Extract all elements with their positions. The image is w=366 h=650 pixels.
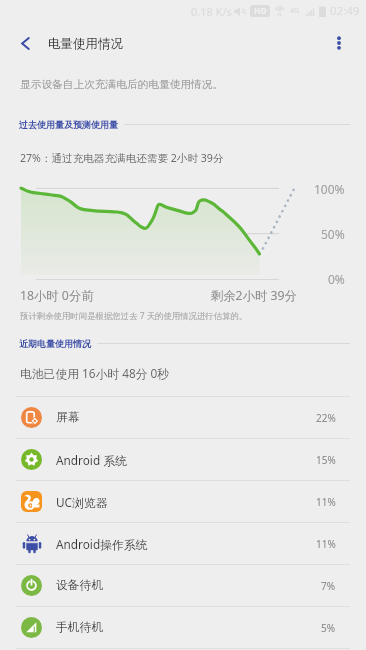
staticText: 手机待机 <box>56 620 104 635</box>
staticText: 18小时 0分前 <box>20 287 94 304</box>
button[interactable]: 手机待机 <box>0 607 366 648</box>
staticText: 7% <box>321 579 336 593</box>
staticText: 电池已使用 16小时 48分 0秒 <box>20 365 170 381</box>
staticText: 过去使用量及预测使用量 <box>19 119 118 130</box>
staticText: 11% <box>316 495 336 509</box>
staticText: 屏幕 <box>56 410 80 425</box>
staticText: 0.18 K/s <box>191 4 232 19</box>
staticText: 15% <box>316 453 336 467</box>
button[interactable]: More options <box>326 30 352 56</box>
staticText: 显示设备自上次充满电后的电量使用情况。 <box>20 78 224 91</box>
staticText: 近期电量使用情况 <box>19 338 91 349</box>
staticText: 27%：通过充电器充满电还需要 2小时 39分 <box>20 151 224 165</box>
button[interactable]: UC浏览器 <box>0 481 366 522</box>
button[interactable]: Android 系统 <box>0 439 366 480</box>
staticText: 02:49 <box>330 3 360 19</box>
staticText: Android操作系统 <box>56 536 148 552</box>
staticText: 22% <box>316 411 336 425</box>
staticText: 设备待机 <box>56 578 104 593</box>
staticText: 5% <box>321 621 336 635</box>
button[interactable]: Back <box>12 30 38 56</box>
staticText: 电量使用情况 <box>48 36 123 52</box>
staticText: 0% <box>328 271 345 287</box>
staticText: HD <box>254 5 267 17</box>
staticText: 4G <box>290 6 300 16</box>
staticText: 100% <box>314 181 345 197</box>
staticText: 剩余2小时 39分 <box>211 287 297 304</box>
staticText: Android 系统 <box>56 452 127 468</box>
staticText: 11% <box>316 537 336 551</box>
staticText: 50% <box>321 226 345 242</box>
staticText: UC浏览器 <box>56 494 108 510</box>
button[interactable]: Android操作系统 <box>0 523 366 564</box>
staticText: 预计剩余使用时间是根据您过去 7 天的使用情况进行估算的。 <box>20 310 248 321</box>
button[interactable]: 设备待机 <box>0 565 366 606</box>
button[interactable]: 屏幕 <box>0 397 366 438</box>
